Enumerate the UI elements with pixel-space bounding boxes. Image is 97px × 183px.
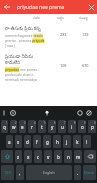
staticText: w	[12, 124, 16, 130]
button[interactable]: o	[78, 120, 86, 133]
staticText: 4	[34, 121, 36, 125]
button[interactable]: Back	[0, 0, 14, 14]
button[interactable]: w	[10, 120, 17, 133]
staticText: అర్థం	[57, 16, 64, 21]
staticText: 670	[82, 63, 89, 68]
staticText: o	[81, 124, 84, 130]
staticText: రా-తీసుకు ప్రేమ కన్న	[5, 25, 41, 32]
button[interactable]: Voice input	[44, 110, 50, 116]
staticText: 2	[15, 121, 17, 125]
staticText: కాదులేని	[5, 60, 21, 66]
button[interactable]: j	[63, 135, 71, 148]
button[interactable]: y	[48, 120, 56, 133]
staticText: ,	[19, 170, 21, 176]
button[interactable]: Backspace	[84, 150, 96, 163]
button[interactable]: English	[26, 165, 72, 180]
button[interactable]: e	[19, 120, 26, 133]
button[interactable]: n	[64, 150, 72, 163]
button[interactable]: z	[15, 150, 22, 163]
staticText: d	[26, 139, 29, 145]
staticText: e	[21, 124, 24, 130]
staticText: a	[8, 139, 11, 145]
button[interactable]: Theme	[77, 110, 83, 116]
button[interactable]: Shift	[1, 150, 13, 163]
staticText: u	[61, 124, 64, 130]
staticText: r	[31, 124, 33, 130]
button[interactable]: g	[43, 135, 51, 148]
staticText: z	[17, 154, 20, 160]
button[interactable]: రా-తీసుకు ప్రేమ కన్న	[0, 24, 97, 50]
staticText: v	[47, 154, 50, 160]
staticText: 9	[84, 121, 86, 125]
staticText: [ naa ]	[5, 43, 15, 48]
button[interactable]: m	[74, 150, 82, 163]
button[interactable]: d	[24, 135, 31, 148]
staticText: k	[76, 139, 79, 145]
staticText: priyudaa nee prema -	[5, 67, 40, 72]
staticText: 283	[60, 32, 67, 37]
button[interactable]: Done	[83, 165, 96, 180]
staticText: x	[27, 154, 30, 160]
staticText: 123	[4, 170, 11, 175]
button[interactable]: ప్రియుడా నీవీమ	[0, 52, 97, 82]
button[interactable]: l	[83, 135, 91, 148]
staticText: prerise - prasesa priyuda	[5, 38, 45, 43]
staticText: n	[67, 154, 70, 160]
staticText: j	[66, 139, 68, 145]
staticText: nemnadi nemnadya	[5, 77, 37, 82]
button[interactable]: s	[15, 135, 22, 148]
staticText: 1	[6, 121, 8, 125]
staticText: f	[36, 139, 38, 145]
button[interactable]: Comma	[16, 165, 24, 180]
button[interactable]: c	[34, 150, 42, 163]
staticText: g	[46, 139, 49, 145]
button[interactable]: r	[28, 120, 36, 133]
staticText: 109	[60, 63, 67, 68]
staticText: Done	[84, 170, 95, 175]
button[interactable]: Period	[74, 165, 81, 180]
staticText: p	[91, 124, 94, 130]
button[interactable]: More options	[86, 110, 92, 116]
staticText: 5	[44, 121, 46, 125]
button[interactable]: a	[6, 135, 13, 148]
button[interactable]: Clear search	[85, 1, 97, 13]
staticText: paalanude chenti -	[5, 72, 35, 77]
staticText: 129	[82, 32, 89, 37]
button[interactable]: p	[88, 120, 96, 133]
staticText: y	[51, 124, 54, 130]
staticText: సంఖ్య	[79, 16, 88, 21]
staticText: 6	[54, 121, 56, 125]
staticText: m	[76, 154, 81, 160]
staticText: nammichagainee teedu	[5, 33, 43, 38]
staticText: 0	[94, 121, 96, 125]
button[interactable]: Clipboard	[1, 110, 7, 116]
staticText: b	[57, 154, 60, 160]
staticText: l	[86, 139, 88, 145]
button[interactable]: i	[68, 120, 76, 133]
button[interactable]: v	[44, 150, 52, 163]
staticText: i	[71, 124, 73, 130]
button[interactable]: 123	[1, 165, 14, 180]
button[interactable]: Settings	[10, 110, 16, 116]
staticText: priyudaa nee prema	[17, 4, 65, 11]
button[interactable]: f	[33, 135, 41, 148]
button[interactable]: u	[58, 120, 66, 133]
staticText: 7	[64, 121, 66, 125]
button[interactable]: h	[53, 135, 61, 148]
button[interactable]: b	[54, 150, 62, 163]
staticText: .	[77, 170, 79, 176]
staticText: q	[3, 124, 6, 130]
staticText: పదం	[33, 16, 40, 21]
staticText: s	[17, 139, 20, 145]
staticText: h	[56, 139, 59, 145]
staticText: 3	[24, 121, 26, 125]
staticText: English	[43, 170, 55, 175]
staticText: ప్రియుడా నీవీమ	[5, 53, 33, 60]
button[interactable]: k	[73, 135, 81, 148]
staticText: c	[37, 154, 40, 160]
staticText: t	[41, 124, 43, 130]
button[interactable]: x	[24, 150, 32, 163]
staticText: 8	[74, 121, 76, 125]
button[interactable]: t	[38, 120, 46, 133]
button[interactable]: q	[1, 120, 8, 133]
